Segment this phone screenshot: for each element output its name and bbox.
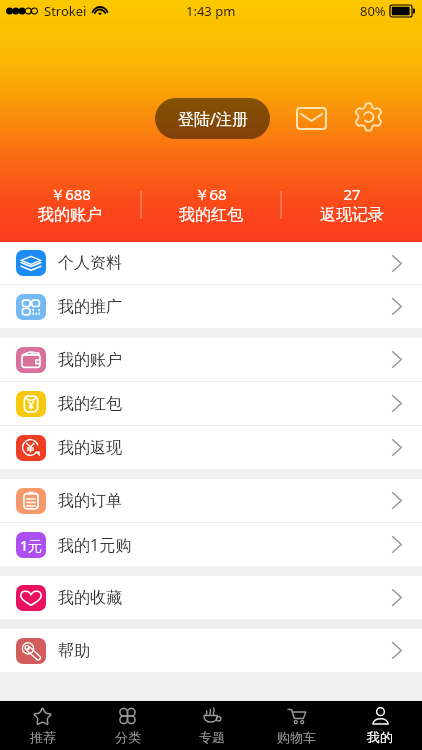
staticText: 分类 (115, 729, 141, 745)
button[interactable]: 我的账户 (0, 338, 422, 381)
staticText: 我的收藏 (58, 588, 122, 608)
button[interactable]: 帮助 (0, 629, 422, 672)
button[interactable]: Messages (292, 103, 330, 133)
button[interactable]: 我的订单 (0, 479, 422, 522)
staticText: 专题 (199, 729, 225, 745)
staticText: 我的账户 (58, 350, 122, 370)
staticText: 我的推广 (58, 297, 122, 317)
staticText: 我的账户 (38, 205, 102, 224)
button[interactable]: 个人资料 (0, 242, 422, 284)
staticText: 我的订单 (58, 491, 122, 511)
staticText: 我的 (367, 729, 393, 745)
button[interactable]: 登陆/注册 (155, 98, 270, 139)
staticText: 1:43 pm (186, 2, 236, 20)
staticText: ￥688 (50, 184, 91, 204)
staticText: 返现记录 (320, 205, 384, 224)
button[interactable]: 分类 (85, 701, 170, 750)
button[interactable]: 我的收藏 (0, 576, 422, 619)
staticText: ￥68 (194, 184, 227, 204)
staticText: 我的1元购 (58, 534, 132, 556)
staticText: Strokei (44, 2, 87, 20)
staticText: 我的红包 (58, 394, 122, 414)
staticText: 我的红包 (179, 205, 243, 224)
button[interactable]: 推荐 (0, 701, 85, 750)
button[interactable]: 我的推广 (0, 285, 422, 328)
button[interactable]: 我的红包 (0, 382, 422, 425)
staticText: 27 (343, 184, 361, 204)
button[interactable]: ￥688 (0, 184, 140, 224)
staticText: 帮助 (58, 641, 90, 661)
staticText: 我的返现 (58, 438, 122, 458)
button[interactable]: 购物车 (254, 701, 338, 750)
staticText: 80% (360, 2, 386, 20)
button[interactable]: 1元 (0, 523, 422, 566)
staticText: 1元 (20, 536, 43, 555)
button[interactable]: 27 (281, 184, 422, 224)
button[interactable]: ￥68 (140, 184, 281, 224)
button[interactable]: Settings (349, 100, 387, 134)
button[interactable]: 我的 (338, 701, 422, 750)
staticText: 登陆/注册 (178, 108, 248, 130)
staticText: 个人资料 (58, 253, 122, 273)
staticText: 购物车 (277, 729, 316, 745)
staticText: 推荐 (30, 729, 56, 745)
button[interactable]: 我的返现 (0, 426, 422, 469)
button[interactable]: 专题 (170, 701, 254, 750)
